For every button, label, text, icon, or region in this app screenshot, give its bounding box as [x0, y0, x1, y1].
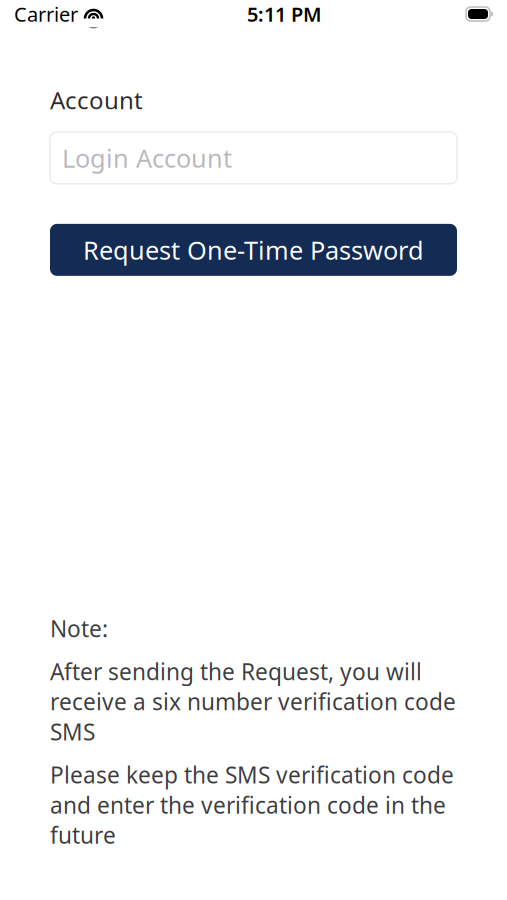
- staticText: Note:: [50, 613, 108, 643]
- staticText: Account: [50, 84, 143, 116]
- button[interactable]: Login Account: [50, 132, 457, 184]
- staticText: After sending the Request, you will rece…: [50, 656, 456, 747]
- staticText: Request One-Time Password: [83, 233, 424, 267]
- staticText: 5:11 PM: [247, 1, 322, 27]
- staticText: Login Account: [62, 141, 232, 175]
- staticText: Please keep the SMS verification code an…: [50, 760, 454, 850]
- staticText: Carrier: [14, 1, 78, 27]
- button[interactable]: Request One-Time Password: [50, 224, 457, 276]
